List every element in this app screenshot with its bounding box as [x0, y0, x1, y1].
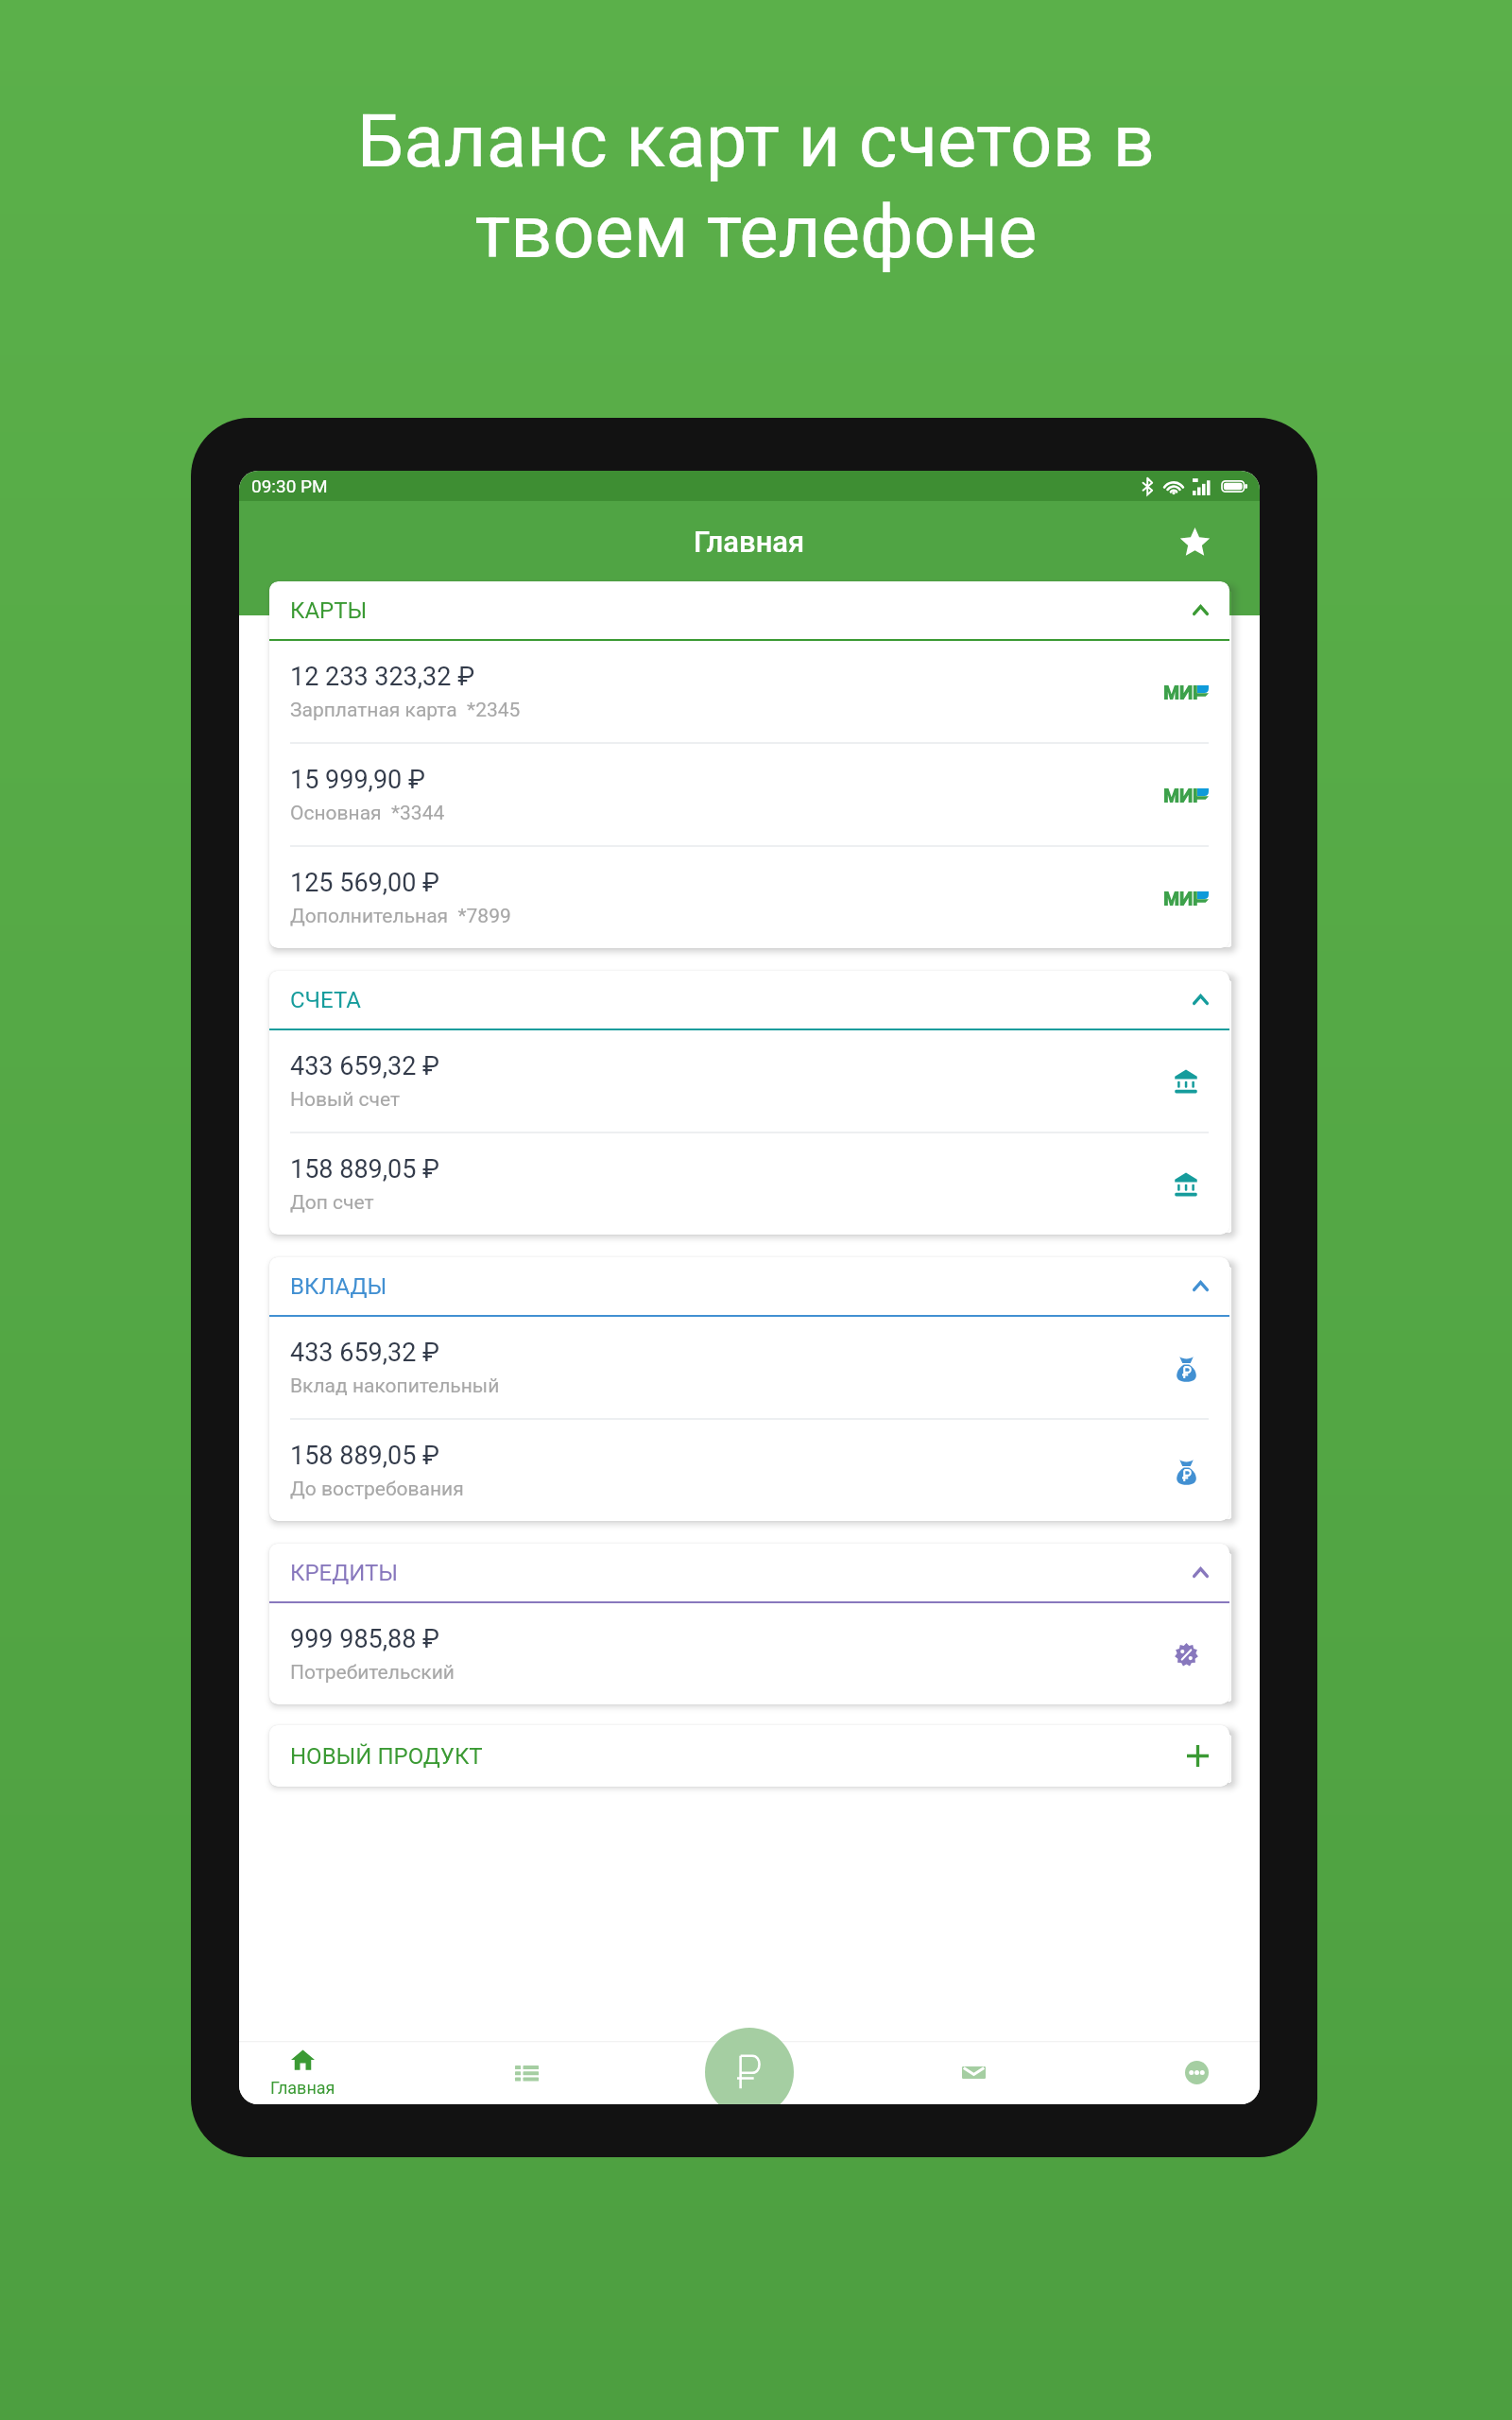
staticText: Главная [694, 525, 805, 559]
staticText: Главная [270, 2078, 335, 2098]
button[interactable]: 158 889,05 ₽ [269, 1133, 1229, 1235]
staticText: Дополнительная *7899 [290, 905, 511, 928]
staticText: 12 233 323,32 ₽ [290, 662, 475, 692]
button[interactable]: Home [241, 2041, 364, 2104]
button[interactable]: КАРТЫ [269, 581, 1229, 639]
staticText: КРЕДИТЫ [290, 1560, 399, 1586]
button[interactable]: More [1135, 2041, 1258, 2104]
button[interactable]: НОВЫЙ ПРОДУКТ [269, 1725, 1229, 1787]
staticText: СЧЕТА [290, 987, 361, 1013]
button[interactable]: Favorites [1174, 521, 1215, 562]
button[interactable]: Payments list [465, 2041, 588, 2104]
staticText: Баланс карт и счетов в твоем телефоне [0, 98, 1512, 275]
staticText: До востребования [290, 1478, 464, 1501]
staticText: Потребительский [290, 1661, 455, 1685]
button[interactable]: СЧЕТА [269, 971, 1229, 1028]
button[interactable]: 158 889,05 ₽ [269, 1420, 1229, 1521]
button[interactable]: ВКЛАДЫ [269, 1257, 1229, 1315]
staticText: 09:30 PM [251, 475, 328, 496]
button[interactable]: 433 659,32 ₽ [269, 1030, 1229, 1132]
staticText: 999 985,88 ₽ [290, 1624, 440, 1654]
button[interactable]: 12 233 323,32 ₽ [269, 641, 1229, 742]
staticText: КАРТЫ [290, 597, 368, 624]
staticText: 158 889,05 ₽ [290, 1154, 440, 1184]
button[interactable]: 999 985,88 ₽ [269, 1603, 1229, 1704]
staticText: Основная *3344 [290, 802, 445, 825]
button[interactable]: 125 569,00 ₽ [269, 847, 1229, 948]
button[interactable]: КРЕДИТЫ [269, 1544, 1229, 1601]
staticText: Вклад накопительный [290, 1374, 500, 1398]
staticText: Новый счет [290, 1088, 401, 1112]
button[interactable]: 433 659,32 ₽ [269, 1317, 1229, 1418]
button[interactable]: Payments [705, 2028, 794, 2104]
staticText: 15 999,90 ₽ [290, 765, 425, 795]
staticText: Зарплатная карта *2345 [290, 699, 521, 722]
staticText: 158 889,05 ₽ [290, 1441, 440, 1471]
staticText: НОВЫЙ ПРОДУКТ [290, 1743, 483, 1770]
staticText: Доп счет [290, 1191, 374, 1215]
staticText: 433 659,32 ₽ [290, 1051, 440, 1081]
staticText: ВКЛАДЫ [290, 1273, 387, 1300]
staticText: 433 659,32 ₽ [290, 1338, 440, 1368]
staticText: 125 569,00 ₽ [290, 868, 440, 898]
button[interactable]: 15 999,90 ₽ [269, 744, 1229, 845]
button[interactable]: Messages [912, 2041, 1035, 2104]
